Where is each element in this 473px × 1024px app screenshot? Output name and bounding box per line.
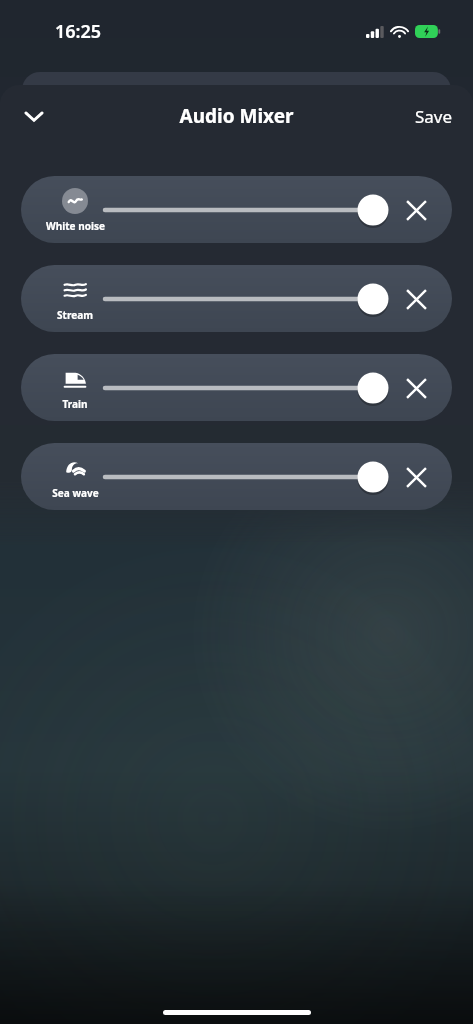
- button[interactable]: Train: [21, 354, 452, 421]
- button[interactable]: Stream: [21, 265, 452, 332]
- button[interactable]: White noise: [21, 176, 452, 243]
- button[interactable]: Remove White noise: [394, 188, 438, 232]
- staticText: 16:25: [55, 19, 102, 44]
- button[interactable]: Save: [405, 97, 463, 136]
- button[interactable]: [105, 368, 374, 408]
- button[interactable]: [105, 190, 374, 230]
- button[interactable]: Remove Sea wave: [394, 455, 438, 499]
- staticText: Train: [62, 397, 88, 411]
- button[interactable]: [105, 457, 374, 497]
- button[interactable]: Remove Stream: [394, 277, 438, 321]
- staticText: Sea wave: [52, 486, 99, 500]
- staticText: Audio Mixer: [179, 103, 294, 129]
- staticText: Save: [415, 105, 453, 128]
- button[interactable]: Sea wave: [21, 443, 452, 510]
- staticText: White noise: [46, 219, 105, 233]
- button[interactable]: [105, 279, 374, 319]
- button[interactable]: Collapse: [12, 94, 56, 138]
- button[interactable]: Remove Train: [394, 366, 438, 410]
- staticText: Stream: [57, 308, 93, 322]
